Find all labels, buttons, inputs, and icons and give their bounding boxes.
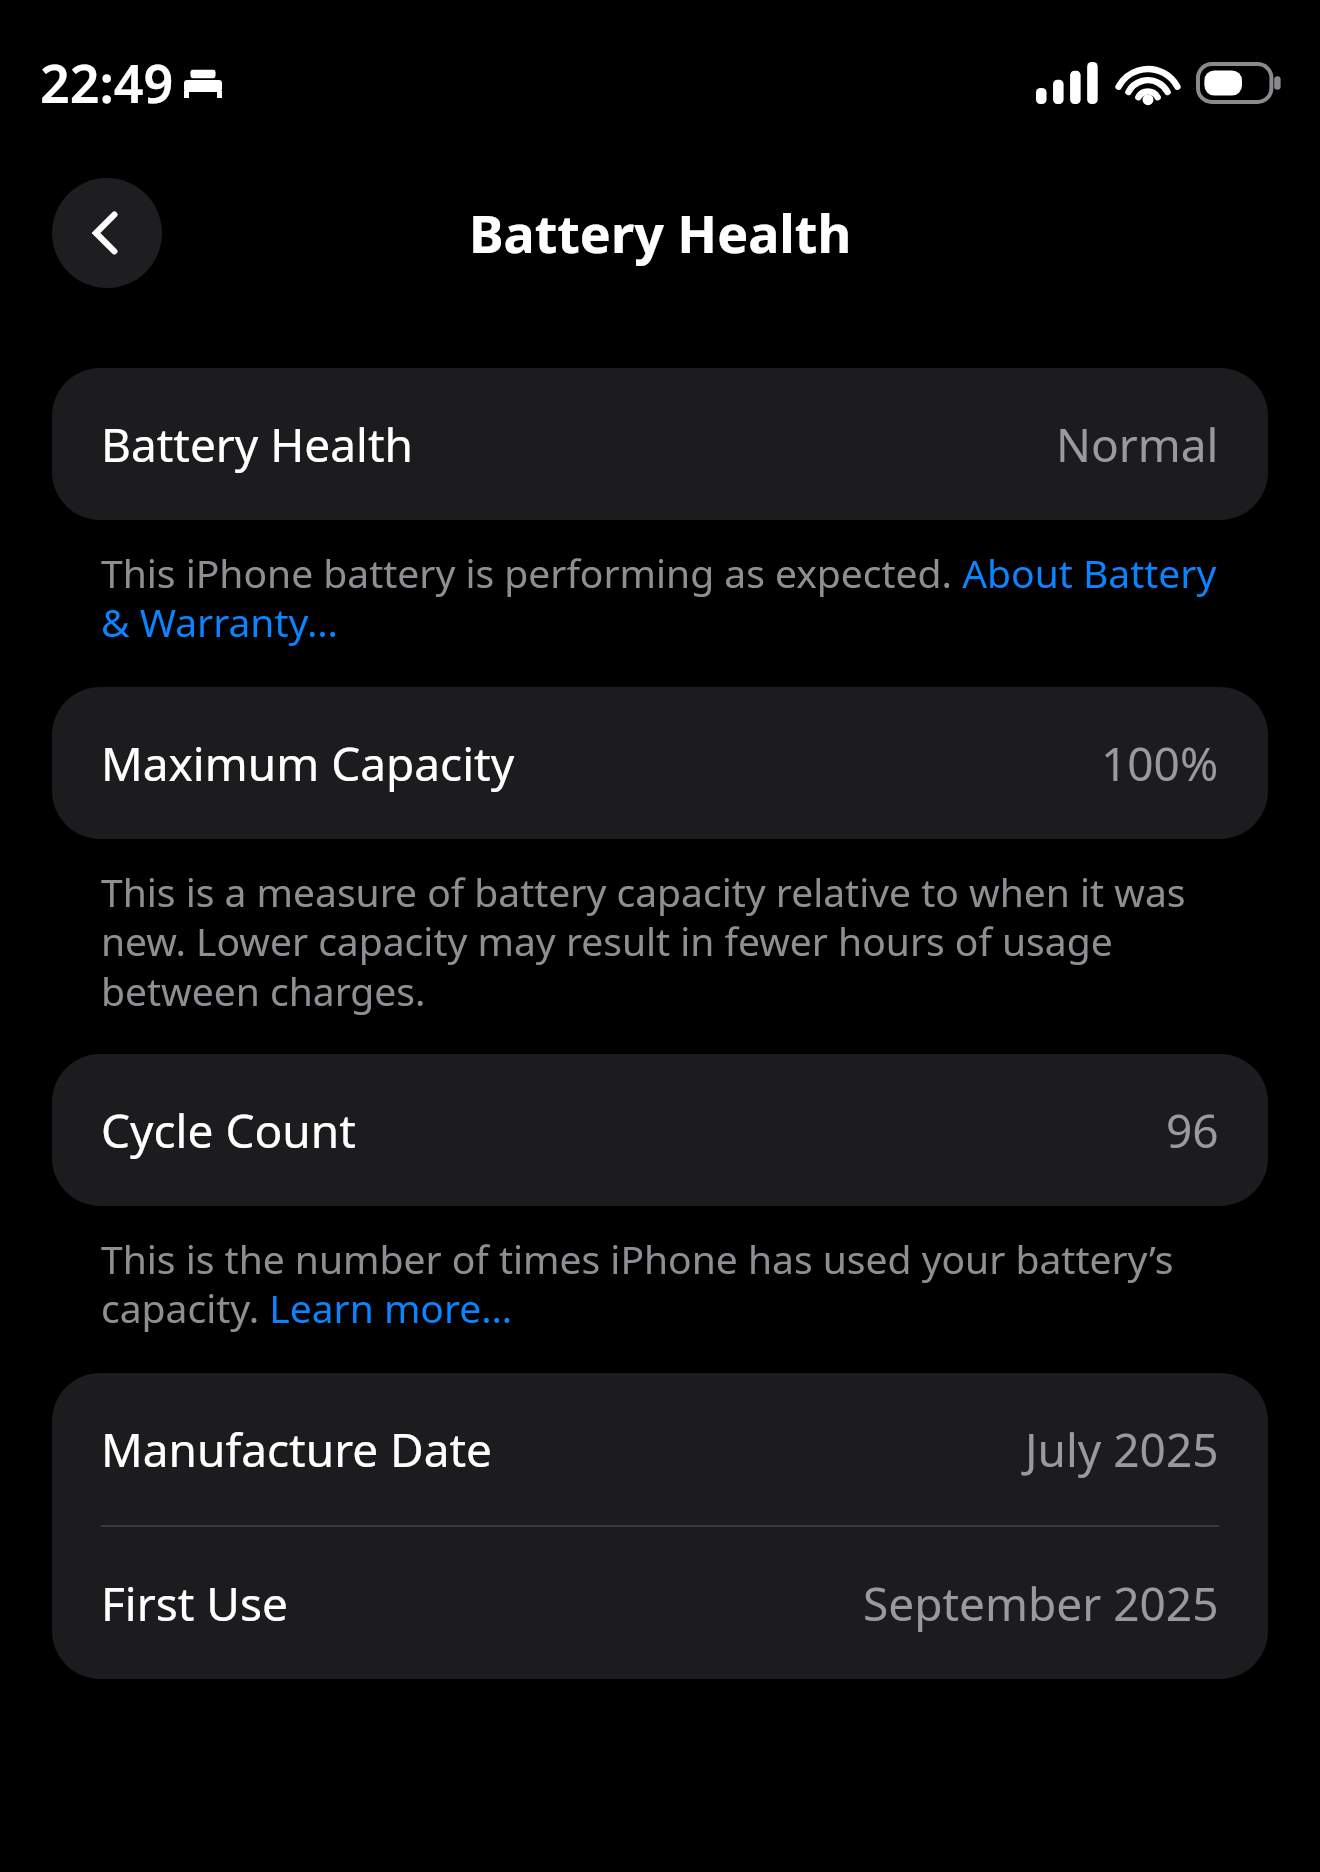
- button[interactable]: First Use: [52, 1527, 1268, 1679]
- staticText: This iPhone battery is performing as exp…: [101, 546, 1240, 649]
- staticText: Battery Health: [101, 413, 414, 476]
- button[interactable]: Maximum Capacity: [52, 687, 1268, 839]
- staticText: This is the number of times iPhone has u…: [101, 1232, 1240, 1335]
- staticText: September 2025: [863, 1572, 1219, 1635]
- staticText: Cycle Count: [101, 1099, 356, 1162]
- staticText: Normal: [1056, 413, 1219, 476]
- button[interactable]: Cycle Count: [52, 1054, 1268, 1206]
- button[interactable]: Manufacture Date: [52, 1373, 1268, 1525]
- staticText: This is a measure of battery capacity re…: [101, 865, 1240, 1018]
- button[interactable]: Battery Health: [52, 368, 1268, 520]
- staticText: Manufacture Date: [101, 1418, 493, 1481]
- staticText: Battery Health: [469, 197, 852, 268]
- staticText: 96: [1166, 1099, 1219, 1162]
- staticText: July 2025: [1025, 1418, 1219, 1481]
- staticText: First Use: [101, 1572, 288, 1635]
- staticText: Maximum Capacity: [101, 732, 515, 795]
- staticText: 22:49: [40, 47, 174, 118]
- button[interactable]: Back: [52, 178, 162, 288]
- staticText: 100%: [1101, 732, 1219, 795]
